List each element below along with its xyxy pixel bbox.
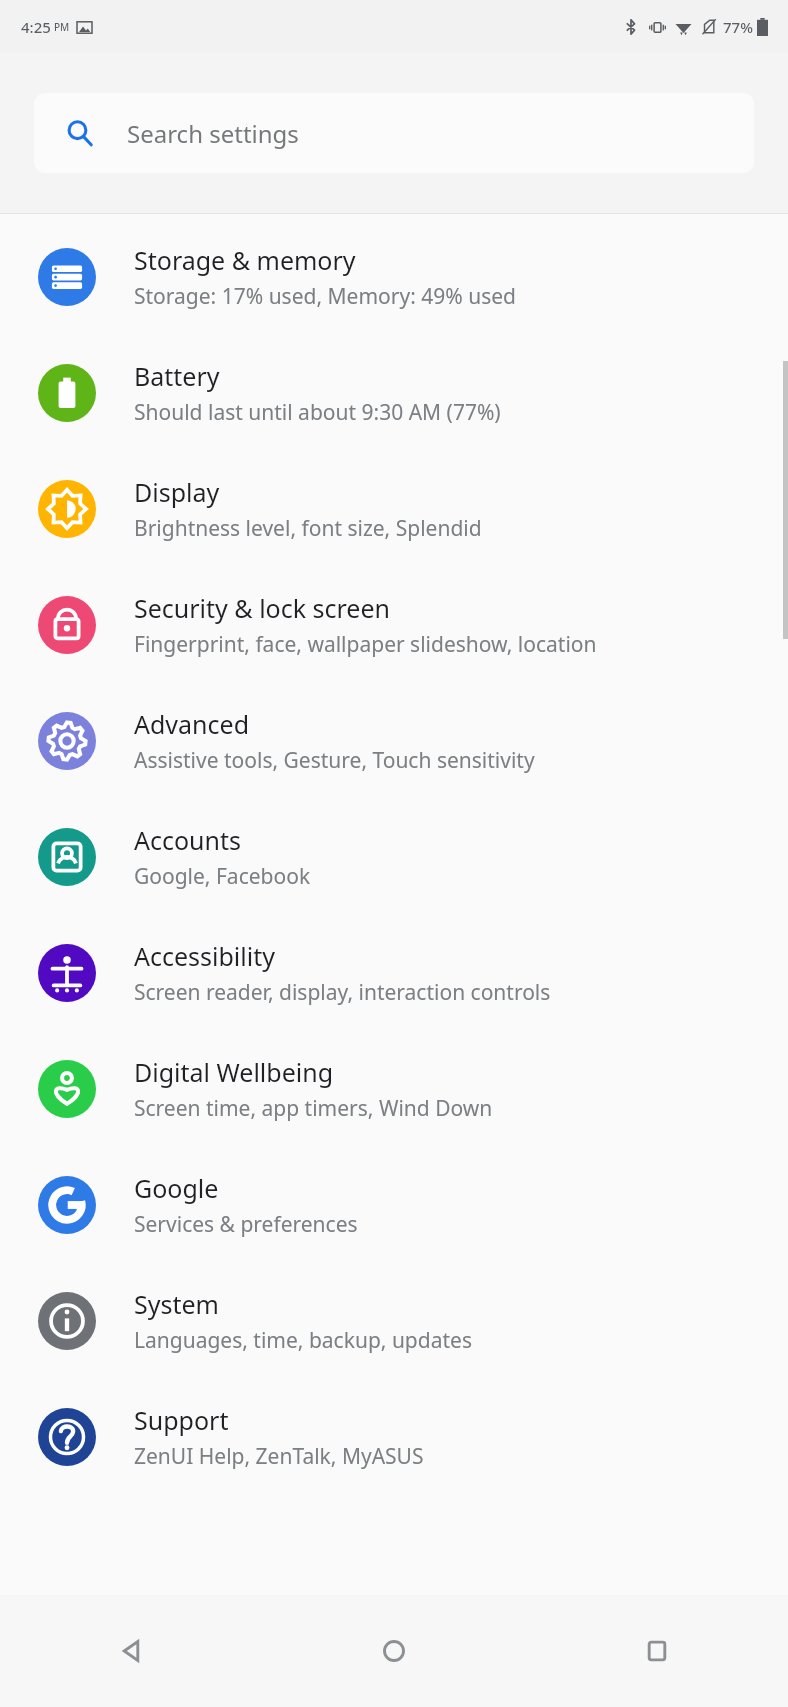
staticText: Google: [134, 1171, 219, 1205]
staticText: Google, Facebook: [134, 862, 311, 891]
staticText: 77%: [723, 17, 753, 37]
staticText: Should last until about 9:30 AM (77%): [134, 398, 501, 427]
staticText: Assistive tools, Gesture, Touch sensitiv…: [134, 746, 535, 775]
staticText: Screen reader, display, interaction cont…: [134, 978, 551, 1007]
button[interactable]: Google: [0, 1147, 788, 1263]
staticText: ZenUI Help, ZenTalk, MyASUS: [134, 1442, 424, 1471]
staticText: Fingerprint, face, wallpaper slideshow, …: [134, 630, 597, 659]
button[interactable]: Search settings: [34, 93, 754, 173]
staticText: Storage: 17% used, Memory: 49% used: [134, 282, 516, 311]
button[interactable]: Security & lock screen: [0, 567, 788, 683]
staticText: Languages, time, backup, updates: [134, 1326, 472, 1355]
staticText: Accessibility: [134, 939, 275, 973]
button[interactable]: Recent apps: [525, 1595, 788, 1707]
button[interactable]: Back: [0, 1595, 262, 1707]
button[interactable]: Storage & memory: [0, 219, 788, 335]
staticText: Services & preferences: [134, 1210, 358, 1239]
button[interactable]: Support: [0, 1379, 788, 1495]
staticText: Display: [134, 475, 220, 509]
staticText: Support: [134, 1403, 229, 1437]
staticText: System: [134, 1287, 219, 1321]
button[interactable]: Display: [0, 451, 788, 567]
staticText: Accounts: [134, 823, 242, 857]
staticText: 4:25: [21, 17, 51, 37]
button[interactable]: Advanced: [0, 683, 788, 799]
staticText: Storage & memory: [134, 243, 356, 277]
button[interactable]: System: [0, 1263, 788, 1379]
staticText: Advanced: [134, 707, 250, 741]
staticText: Brightness level, font size, Splendid: [134, 514, 482, 543]
staticText: Battery: [134, 359, 220, 393]
staticText: Security & lock screen: [134, 591, 391, 625]
button[interactable]: Home: [262, 1595, 525, 1707]
button[interactable]: Accessibility: [0, 915, 788, 1031]
staticText: PM: [54, 20, 70, 34]
button[interactable]: Battery: [0, 335, 788, 451]
button[interactable]: Accounts: [0, 799, 788, 915]
button[interactable]: Digital Wellbeing: [0, 1031, 788, 1147]
staticText: Screen time, app timers, Wind Down: [134, 1094, 493, 1123]
staticText: Digital Wellbeing: [134, 1055, 334, 1089]
staticText: Search settings: [127, 117, 299, 150]
